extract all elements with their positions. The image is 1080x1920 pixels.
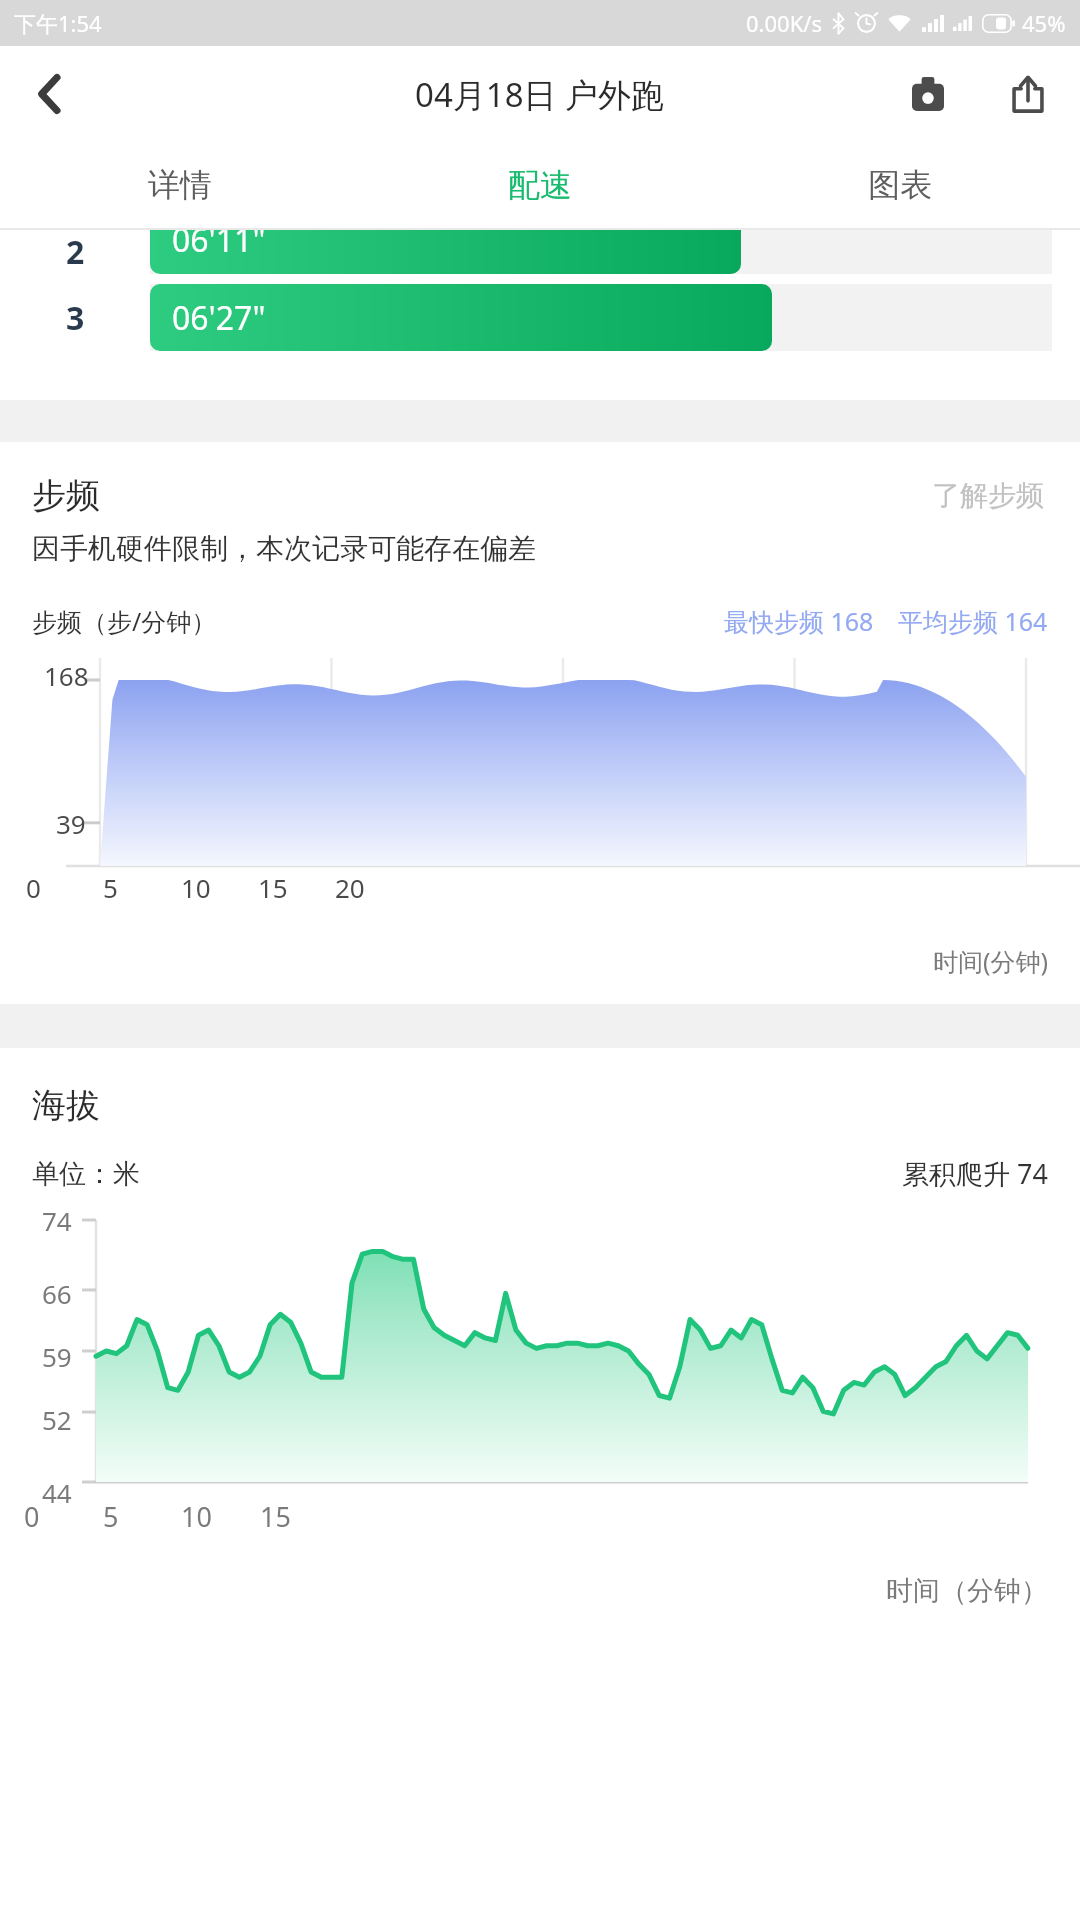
staticText: 最快步频 168 bbox=[724, 604, 874, 638]
staticText: 时间(分钟) bbox=[0, 944, 1048, 978]
staticText: 44 bbox=[42, 1475, 72, 1510]
staticText: 了解步频 bbox=[932, 478, 1044, 513]
staticText: 步频（步/分钟） bbox=[32, 604, 217, 638]
button[interactable]: 3 bbox=[0, 284, 1080, 351]
button[interactable]: 图表 bbox=[720, 142, 1080, 228]
button[interactable]: 配速 bbox=[360, 142, 720, 228]
staticText: 168 bbox=[44, 658, 89, 693]
button[interactable]: Back bbox=[18, 62, 82, 126]
staticText: 5 bbox=[103, 1498, 119, 1535]
staticText: 06'11" bbox=[172, 230, 266, 262]
staticText: 配速 bbox=[508, 165, 572, 205]
staticText: 06'27" bbox=[172, 296, 266, 340]
staticText: 因手机硬件限制，本次记录可能存在偏差 bbox=[32, 531, 536, 566]
staticText: 海拔 bbox=[32, 1084, 100, 1127]
staticText: 平均步频 164 bbox=[898, 604, 1048, 638]
staticText: 15 bbox=[260, 1498, 291, 1535]
staticText: 59 bbox=[42, 1339, 72, 1374]
staticText: 累积爬升 74 bbox=[902, 1155, 1048, 1192]
staticText: 5 bbox=[103, 870, 118, 905]
staticText: 0.00K/s bbox=[746, 8, 822, 38]
staticText: 详情 bbox=[148, 165, 212, 205]
staticText: 2 bbox=[66, 230, 85, 274]
staticText: 15 bbox=[258, 870, 288, 905]
staticText: 52 bbox=[42, 1402, 72, 1437]
button[interactable]: 详情 bbox=[0, 142, 360, 228]
staticText: 步频 bbox=[32, 474, 100, 517]
staticText: 图表 bbox=[868, 165, 932, 205]
staticText: 下午1:54 bbox=[14, 8, 102, 38]
staticText: 74 bbox=[42, 1203, 72, 1238]
staticText: 39 bbox=[56, 806, 86, 841]
staticText: 66 bbox=[42, 1276, 72, 1311]
button[interactable]: Camera bbox=[896, 62, 960, 126]
staticText: 04月18日 户外跑 bbox=[415, 72, 665, 117]
button[interactable]: 2 bbox=[0, 230, 1080, 274]
staticText: 45% bbox=[1022, 8, 1066, 38]
staticText: 10 bbox=[181, 870, 211, 905]
button[interactable]: 了解步频 bbox=[928, 474, 1048, 517]
staticText: 3 bbox=[66, 296, 85, 340]
staticText: 单位：米 bbox=[32, 1157, 140, 1191]
staticText: 时间（分钟） bbox=[886, 1574, 1048, 1608]
staticText: 0 bbox=[26, 870, 41, 905]
button[interactable]: Share bbox=[996, 62, 1060, 126]
staticText: 10 bbox=[181, 1498, 212, 1535]
staticText: 20 bbox=[335, 870, 365, 905]
staticText: 0 bbox=[24, 1498, 40, 1535]
